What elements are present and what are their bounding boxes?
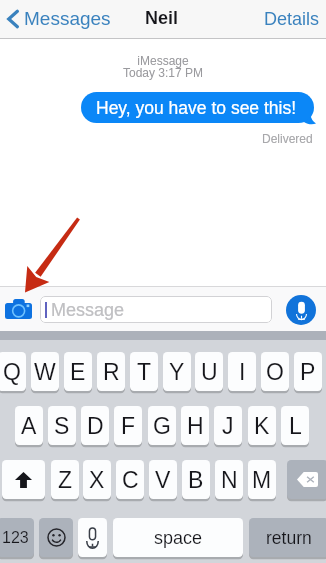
button[interactable]: C [116, 460, 144, 499]
staticText: Details [264, 9, 320, 29]
button[interactable]: K [248, 406, 276, 445]
button[interactable]: Backspace [287, 460, 326, 499]
staticText: E [70, 359, 86, 385]
button[interactable]: M [248, 460, 276, 499]
button[interactable]: Dictate message [286, 295, 316, 325]
button[interactable]: U [195, 352, 223, 391]
staticText: D [87, 413, 104, 439]
staticText: space [154, 528, 203, 548]
staticText: Messages [24, 8, 111, 29]
button[interactable]: Message [40, 296, 272, 323]
button[interactable]: Emoji [39, 518, 73, 557]
button[interactable]: G [148, 406, 176, 445]
staticText: return [266, 528, 312, 548]
staticText: Neil [145, 8, 179, 28]
staticText: W [34, 359, 56, 385]
button[interactable]: J [214, 406, 242, 445]
button[interactable]: X [83, 460, 111, 499]
staticText: Y [169, 359, 185, 385]
button[interactable]: O [261, 352, 289, 391]
button[interactable]: R [97, 352, 125, 391]
button[interactable]: Hey, you have to see this! [81, 92, 314, 123]
button[interactable]: Messages [3, 3, 117, 34]
staticText: M [252, 467, 272, 493]
staticText: Hey, you have to see this! [96, 98, 297, 118]
button[interactable]: return [249, 518, 326, 557]
staticText: K [254, 413, 270, 439]
staticText: P [300, 359, 316, 385]
staticText: B [188, 467, 204, 493]
button[interactable]: Shift [2, 460, 45, 499]
button[interactable]: N [215, 460, 243, 499]
staticText: X [89, 467, 105, 493]
button[interactable]: H [181, 406, 209, 445]
staticText: T [137, 359, 152, 385]
button[interactable]: T [130, 352, 158, 391]
staticText: iMessage [0, 54, 326, 67]
staticText: G [153, 413, 171, 439]
button[interactable]: Details [256, 3, 326, 35]
staticText: N [221, 467, 238, 493]
staticText: Today 3:17 PM [0, 66, 326, 79]
button[interactable]: 123 [0, 518, 34, 557]
button[interactable]: L [281, 406, 309, 445]
button[interactable]: P [294, 352, 322, 391]
staticText: Message [51, 300, 125, 320]
button[interactable]: Y [163, 352, 191, 391]
button[interactable]: F [114, 406, 142, 445]
staticText: Q [3, 359, 21, 385]
staticText: R [103, 359, 120, 385]
button[interactable]: Q [0, 352, 26, 391]
button[interactable]: W [31, 352, 59, 391]
staticText: 123 [2, 529, 29, 547]
staticText: J [222, 413, 234, 439]
staticText: Z [58, 467, 73, 493]
button[interactable]: space [113, 518, 243, 557]
button[interactable]: Take photo [2, 293, 34, 325]
button[interactable]: I [228, 352, 256, 391]
button[interactable]: E [64, 352, 92, 391]
button[interactable]: D [81, 406, 109, 445]
staticText: L [289, 413, 302, 439]
button[interactable]: B [182, 460, 210, 499]
staticText: H [187, 413, 204, 439]
staticText: O [266, 359, 284, 385]
button[interactable]: Z [51, 460, 79, 499]
staticText: Delivered [262, 132, 313, 145]
staticText: A [21, 413, 37, 439]
button[interactable]: V [149, 460, 177, 499]
staticText: S [54, 413, 70, 439]
staticText: I [239, 359, 246, 385]
staticText: U [201, 359, 218, 385]
button[interactable]: A [15, 406, 43, 445]
button[interactable]: S [48, 406, 76, 445]
button[interactable]: Dictation [78, 518, 107, 557]
staticText: V [155, 467, 171, 493]
staticText: F [121, 413, 136, 439]
staticText: C [122, 467, 139, 493]
